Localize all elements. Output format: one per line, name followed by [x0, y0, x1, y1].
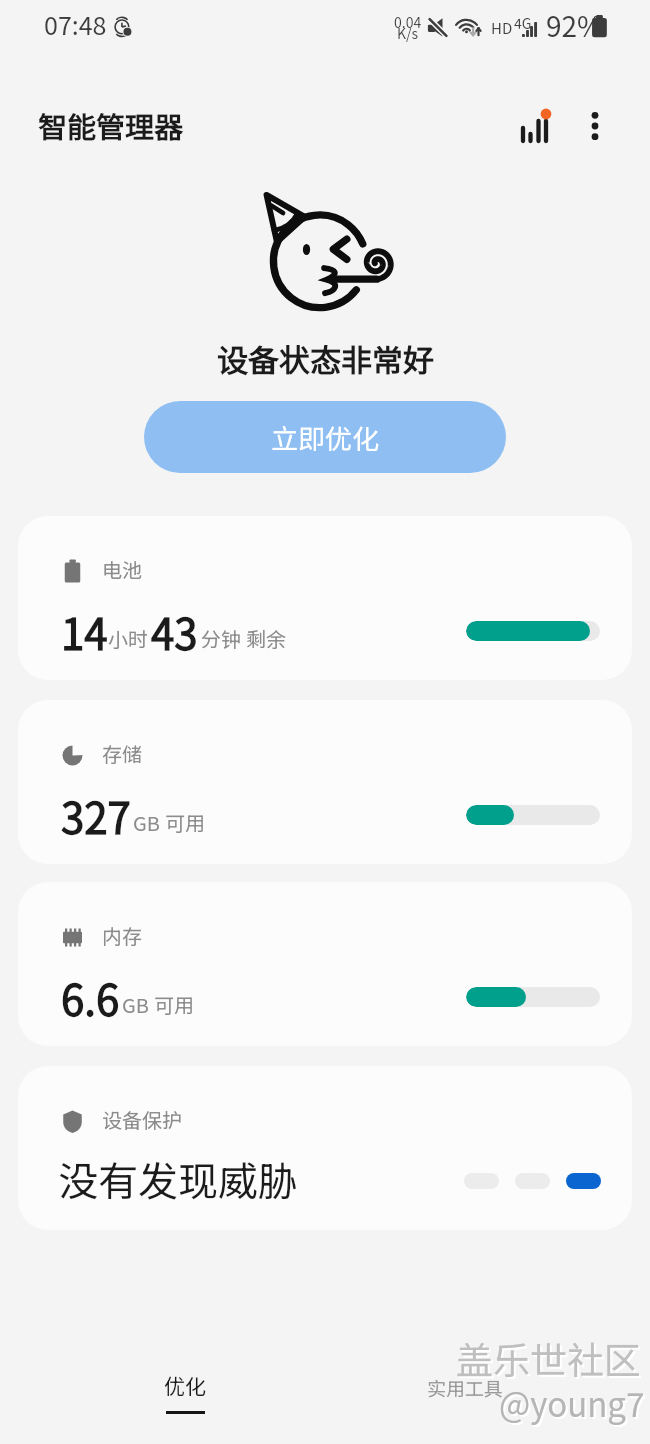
staticText: 实用工具 — [427, 1374, 504, 1402]
staticText: 盖乐世社区 — [458, 1333, 643, 1387]
button[interactable]: 实用工具 — [380, 1340, 550, 1440]
staticText: 4G — [514, 13, 532, 33]
staticText: 92% — [546, 5, 603, 46]
staticText: HD — [491, 17, 513, 39]
staticText: 设备状态非常好 — [217, 336, 434, 381]
staticText: 小时 — [108, 624, 148, 653]
staticText: 优化 — [164, 1370, 206, 1400]
staticText: 剩余 — [246, 624, 286, 653]
staticText: @young7 — [499, 1379, 645, 1427]
staticText: GB — [133, 808, 160, 837]
staticText: 没有发现威胁 — [58, 1150, 298, 1208]
staticText: 智能管理器 — [38, 104, 184, 146]
staticText: 设备保护 — [102, 1105, 182, 1134]
staticText: 14 — [61, 601, 108, 662]
button[interactable]: 内存 — [18, 882, 632, 1046]
staticText: 电池 — [102, 555, 142, 584]
staticText: 分钟 — [201, 624, 241, 653]
staticText: 存储 — [102, 739, 142, 768]
button[interactable]: 立即优化 — [144, 401, 506, 473]
button[interactable]: 电池 — [18, 516, 632, 680]
button[interactable]: More options — [566, 97, 624, 155]
staticText: GB — [122, 990, 149, 1019]
staticText: 43 — [151, 601, 198, 662]
staticText: 可用 — [154, 990, 194, 1019]
staticText: 立即优化 — [271, 418, 379, 457]
staticText: K/s — [397, 23, 419, 43]
staticText: @young7 — [501, 1381, 647, 1429]
staticText: 07:48 — [44, 6, 107, 42]
button[interactable]: 设备保护 — [18, 1066, 632, 1230]
staticText: 盖乐世社区 — [456, 1331, 641, 1385]
staticText: 可用 — [165, 808, 205, 837]
staticText: 6.6 — [61, 967, 120, 1028]
button[interactable]: Usage statistics — [506, 84, 564, 142]
button[interactable]: 优化 — [100, 1340, 270, 1440]
staticText: 内存 — [102, 921, 142, 950]
staticText: 327 — [61, 785, 131, 846]
button[interactable]: 存储 — [18, 700, 632, 864]
staticText: 0.04 — [394, 12, 422, 32]
